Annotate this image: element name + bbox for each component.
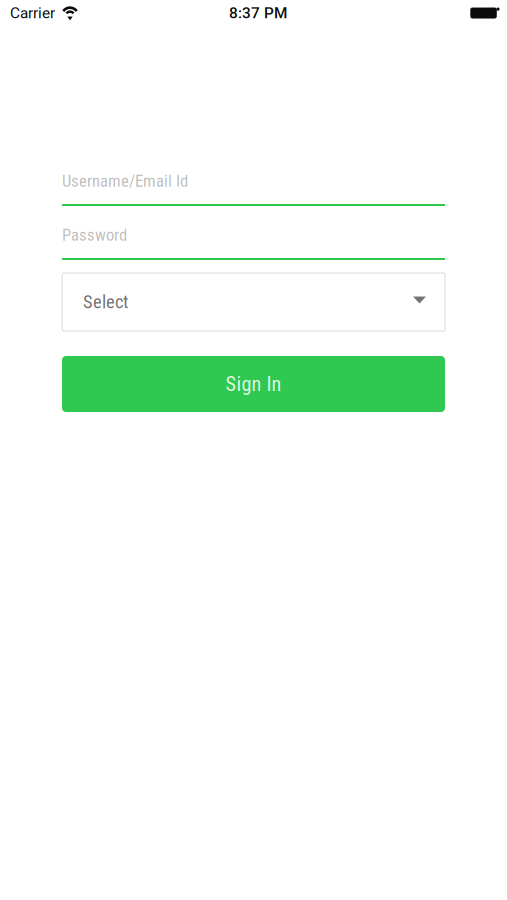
button[interactable]: Username/Email Id	[62, 171, 445, 206]
button[interactable]: Select	[62, 273, 445, 331]
staticText: Password	[62, 225, 127, 245]
staticText: 8:37 PM	[229, 4, 287, 22]
button[interactable]: Password	[62, 225, 445, 260]
staticText: Sign In	[225, 372, 281, 396]
staticText: Username/Email Id	[62, 171, 188, 191]
staticText: Carrier	[10, 4, 55, 22]
button[interactable]: Sign In	[62, 356, 445, 412]
staticText: Select	[83, 291, 128, 313]
